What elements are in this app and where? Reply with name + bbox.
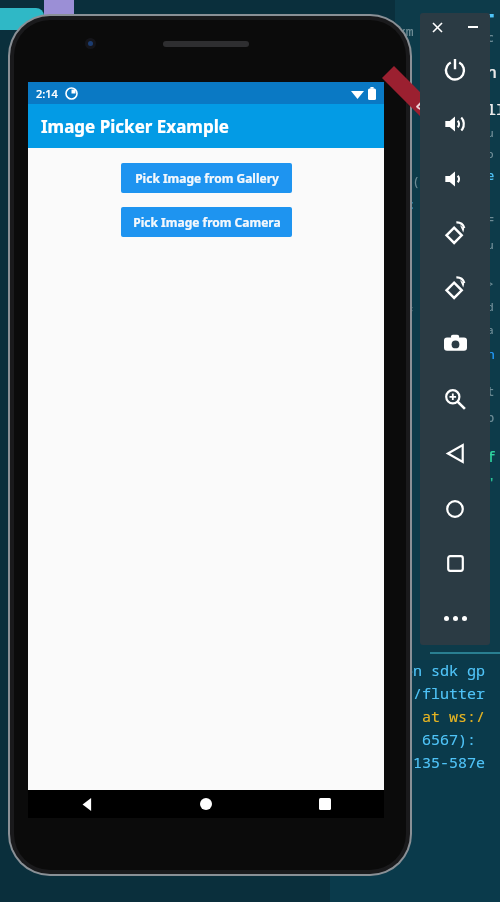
staticText: u <box>487 237 494 252</box>
staticText: a135-587e <box>404 752 486 772</box>
button[interactable]: Take screenshot <box>420 316 490 371</box>
staticText: : <box>406 242 413 257</box>
staticText: ( <box>402 437 410 453</box>
staticText: c <box>406 195 414 213</box>
staticText: s/flutter <box>404 683 486 703</box>
staticText: f <box>402 377 410 395</box>
staticText: n <box>487 345 495 363</box>
button[interactable]: Close <box>420 13 455 41</box>
staticText: " <box>487 474 495 490</box>
staticText: at ws:/ <box>404 706 486 726</box>
staticText: b <box>487 409 495 425</box>
staticText: f <box>487 447 496 466</box>
button[interactable]: Recent apps <box>265 790 384 818</box>
button[interactable]: Zoom <box>420 371 490 426</box>
staticText: u <box>487 125 494 140</box>
staticText: ▬ <box>487 6 494 21</box>
button[interactable]: Home <box>146 790 265 818</box>
button[interactable]: Pick Image from Camera <box>121 207 292 237</box>
staticText: xm <box>398 22 414 40</box>
staticText: o <box>487 146 494 161</box>
staticText: f <box>402 403 410 421</box>
staticText: - <box>402 327 410 343</box>
staticText: a/ <box>398 149 413 165</box>
staticText: Pick Image from Gallery <box>135 170 279 186</box>
staticText: f <box>402 351 410 369</box>
button[interactable]: Back <box>28 790 146 818</box>
staticText: M <box>398 46 409 69</box>
button[interactable]: Volume up <box>420 96 490 151</box>
staticText: DEBUG <box>413 98 448 132</box>
staticText: = <box>487 211 495 227</box>
button[interactable]: Minimize <box>455 13 490 41</box>
button[interactable]: Rotate right <box>420 261 490 316</box>
button[interactable]: Volume down <box>420 151 490 206</box>
staticText: = <box>406 301 414 317</box>
button[interactable]: Power <box>420 41 490 96</box>
button[interactable]: Back <box>420 426 490 481</box>
staticText: [. <box>398 463 412 478</box>
button[interactable]: Pick Image from Gallery <box>121 163 292 193</box>
staticText: a <box>487 322 494 337</box>
staticText: on sdk gp <box>404 660 486 680</box>
staticText: ( 6567): <box>404 729 486 749</box>
staticText: ! ( <box>398 173 420 189</box>
button[interactable]: Home <box>420 481 490 536</box>
staticText: e <box>487 167 495 183</box>
staticText: : <box>406 221 413 236</box>
staticText: ⤳ <box>398 79 410 93</box>
button[interactable]: Rotate left <box>420 206 490 261</box>
button[interactable]: More <box>420 591 490 645</box>
staticText: :) <box>398 125 413 141</box>
staticText: c <box>406 101 414 117</box>
staticText: ll <box>487 99 500 119</box>
staticText: n <box>487 61 497 83</box>
staticText: d <box>487 299 494 314</box>
staticText: > <box>487 276 494 291</box>
staticText: Pick Image from Camera <box>133 214 281 230</box>
staticText: 2:14 <box>36 86 58 101</box>
staticText: t <box>487 383 495 399</box>
staticText: c <box>487 29 495 45</box>
button[interactable]: Overview <box>420 536 490 591</box>
staticText: Image Picker Example <box>41 115 229 138</box>
